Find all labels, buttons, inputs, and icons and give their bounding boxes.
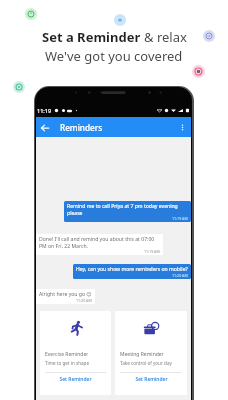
staticText: Meeting Reminder <box>120 351 164 358</box>
button[interactable]: More options <box>176 121 189 134</box>
staticText: 11:19 <box>37 107 52 114</box>
staticText: Done! I'll call and remind you about thi… <box>39 236 160 249</box>
staticText: 11:20 AM <box>172 273 188 278</box>
staticText: Remind me to call Priya at 7 pm today ev… <box>67 203 188 216</box>
staticText: 11:20 AM <box>76 298 92 303</box>
button[interactable]: Back <box>38 121 51 134</box>
staticText: Take control of your day <box>120 360 172 366</box>
staticText: Set a Reminder <box>42 28 144 46</box>
staticText: Hey, can you show more reminders on mobi… <box>76 266 188 273</box>
staticText: & relax <box>144 28 187 46</box>
staticText: Alright here you go 😊 <box>39 291 92 298</box>
staticText: 11:19 AM <box>172 216 188 221</box>
staticText: We've got you covered <box>45 47 183 65</box>
button[interactable]: Set Reminder <box>45 373 106 386</box>
staticText: Reminders <box>60 122 103 133</box>
staticText: Set Reminder <box>135 376 168 383</box>
button[interactable]: Set Reminder <box>120 373 182 386</box>
staticText: Set Reminder <box>59 376 92 383</box>
staticText: Time to get in shape <box>45 360 89 366</box>
staticText: 11:19 AM <box>144 249 160 254</box>
staticText: Exercise Reminder <box>45 351 89 358</box>
